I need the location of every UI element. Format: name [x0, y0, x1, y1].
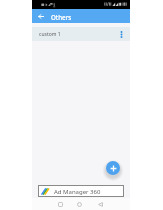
button[interactable]: Home	[75, 200, 84, 209]
button[interactable]: Back	[96, 200, 105, 209]
button[interactable]: More options	[116, 29, 126, 39]
button[interactable]: Back	[35, 10, 47, 22]
button[interactable]: custom 1	[32, 27, 130, 41]
button[interactable]: Recents	[56, 200, 65, 209]
staticText: Ad Manager 360	[54, 188, 101, 196]
button[interactable]: Ad Manager 360	[39, 186, 123, 196]
staticText: Others	[51, 13, 72, 21]
staticText: custom 1	[39, 31, 61, 38]
button[interactable]: Add	[106, 161, 120, 175]
